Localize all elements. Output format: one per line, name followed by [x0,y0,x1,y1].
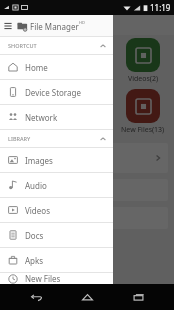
button[interactable]: Network [0,105,113,129]
staticText: Docs(3) [19,125,44,135]
button[interactable]: Device Storage 12.55 GB [6,143,168,173]
button[interactable]: Apks [0,248,113,272]
button[interactable]: Device Storage [0,80,113,104]
button[interactable]: Open navigation drawer [1,19,15,33]
staticText: Videos(2) [128,74,159,84]
button[interactable]: New Files [0,273,113,284]
button[interactable]: Images(8) [6,38,56,84]
staticText: New Files(13) [121,125,165,135]
staticText: Apks(1) [75,125,100,135]
staticText: New Files [25,273,61,284]
staticText: Junk File [12,185,42,195]
button[interactable]: Home [72,284,102,310]
button[interactable]: Downloads [6,207,168,229]
button[interactable]: Audio [0,173,113,197]
button[interactable]: Docs [0,223,113,247]
button[interactable]: Home [0,55,113,79]
staticText: Device Storage [25,87,81,98]
staticText: Docs [25,230,44,241]
staticText: SHORTCUT [8,42,37,49]
staticText: Network [25,112,58,123]
button[interactable]: Back [21,284,51,310]
staticText: Images(8) [15,74,48,84]
staticText: LIBRARY [8,135,31,142]
staticText: 11:19 [150,2,171,13]
button[interactable]: Audio(4) [62,38,112,84]
staticText: Device Storage 12.55 GB [12,150,94,160]
staticText: HD [79,20,85,25]
button[interactable]: New Files(13) [118,89,168,135]
button[interactable]: Videos [0,198,113,222]
button[interactable]: Apks(1) [62,89,112,135]
staticText: Audio(4) [73,74,101,84]
staticText: Downloads [12,213,52,223]
button[interactable]: Recent apps [123,284,153,310]
staticText: Home [25,62,48,73]
staticText: Videos [25,205,50,216]
staticText: Apks [25,255,44,266]
button[interactable]: Videos(2) [118,38,168,84]
staticText: Audio [25,180,47,191]
staticText: File Manager [30,21,79,32]
button[interactable]: Docs(3) [6,89,56,135]
button[interactable]: SHORTCUT [0,37,113,54]
button[interactable]: Junk File [6,179,168,201]
button[interactable]: LIBRARY [0,130,113,147]
button[interactable]: Images [0,148,113,172]
staticText: Images [25,155,53,166]
